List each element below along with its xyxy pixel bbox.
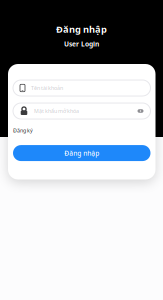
- staticText: Đăng nhập: [56, 23, 107, 35]
- staticText: User Login: [64, 39, 99, 48]
- staticText: Tên tài khoản: [31, 84, 63, 92]
- staticText: Đăng ký: [13, 127, 33, 134]
- button[interactable]: Tên tài khoản: [13, 80, 150, 96]
- button[interactable]: Đăng nhập: [13, 145, 150, 161]
- button[interactable]: Đăng ký: [13, 127, 33, 134]
- staticText: Mật khẩu mở khóa: [34, 107, 79, 115]
- staticText: Đăng nhập: [64, 149, 99, 158]
- button[interactable]: Mật khẩu mở khóa: [13, 103, 150, 119]
